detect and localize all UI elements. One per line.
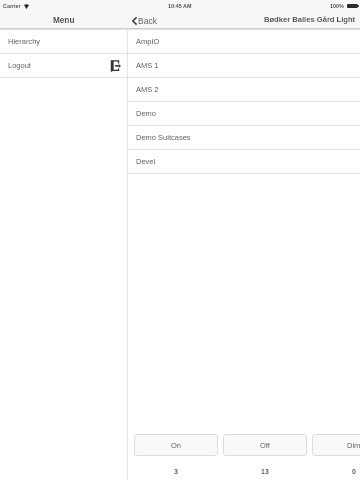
- staticText: Back: [138, 16, 157, 25]
- staticText: AMS 2: [136, 85, 159, 93]
- button[interactable]: Demo Suitcases: [128, 126, 360, 149]
- staticText: AMS 1: [136, 61, 159, 69]
- button[interactable]: Demo: [128, 102, 360, 125]
- button[interactable]: Logout: [0, 54, 127, 77]
- button[interactable]: Hierarchy: [0, 30, 127, 53]
- other: Logout: [110, 60, 121, 72]
- button[interactable]: AMS 2: [128, 78, 360, 101]
- button[interactable]: Off: [223, 434, 307, 456]
- button[interactable]: On: [134, 434, 218, 456]
- button[interactable]: Devel: [128, 150, 360, 173]
- staticText: Menu: [53, 16, 75, 25]
- staticText: Demo: [136, 109, 157, 117]
- staticText: 100%: [330, 3, 344, 9]
- staticText: Off: [260, 441, 270, 449]
- staticText: Devel: [136, 157, 156, 165]
- button[interactable]: Back: [132, 16, 157, 25]
- button[interactable]: AmpIO: [128, 30, 360, 53]
- staticText: Dim: [347, 441, 360, 449]
- staticText: AmpIO: [136, 37, 160, 45]
- staticText: 13: [261, 468, 269, 476]
- button[interactable]: Dim: [312, 434, 360, 456]
- staticText: Demo Suitcases: [136, 133, 191, 141]
- staticText: Logout: [8, 61, 31, 69]
- staticText: 0: [352, 468, 356, 476]
- staticText: Hierarchy: [8, 37, 41, 45]
- staticText: 3: [174, 468, 178, 476]
- staticText: On: [171, 441, 182, 449]
- button[interactable]: AMS 1: [128, 54, 360, 77]
- staticText: 10:45 AM: [168, 3, 192, 9]
- staticText: Carrier: [3, 3, 21, 9]
- staticText: Bødker Balles Gård Light: [264, 15, 356, 23]
